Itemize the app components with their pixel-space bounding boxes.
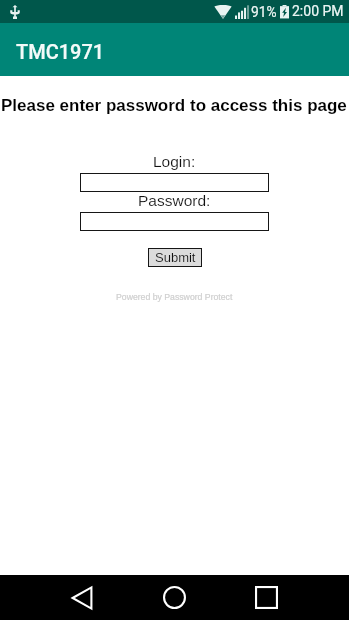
button[interactable]: Back xyxy=(60,575,104,620)
staticText: Login: xyxy=(153,153,196,170)
staticText: Password: xyxy=(138,192,211,209)
button[interactable]: Home xyxy=(152,575,196,620)
staticText: Submit xyxy=(155,250,196,265)
staticText: TMC1971 xyxy=(16,40,105,63)
button[interactable]: Recents xyxy=(244,575,288,620)
button[interactable]: Submit xyxy=(148,248,202,267)
button[interactable] xyxy=(80,173,269,192)
staticText: 91% xyxy=(251,4,277,20)
button[interactable] xyxy=(80,212,269,231)
button[interactable]: TMC1971 xyxy=(0,23,349,76)
staticText: Please enter password to access this pag… xyxy=(1,96,347,115)
staticText: Powered by Password Protect xyxy=(116,292,233,302)
staticText: 2:00 PM xyxy=(292,3,344,19)
